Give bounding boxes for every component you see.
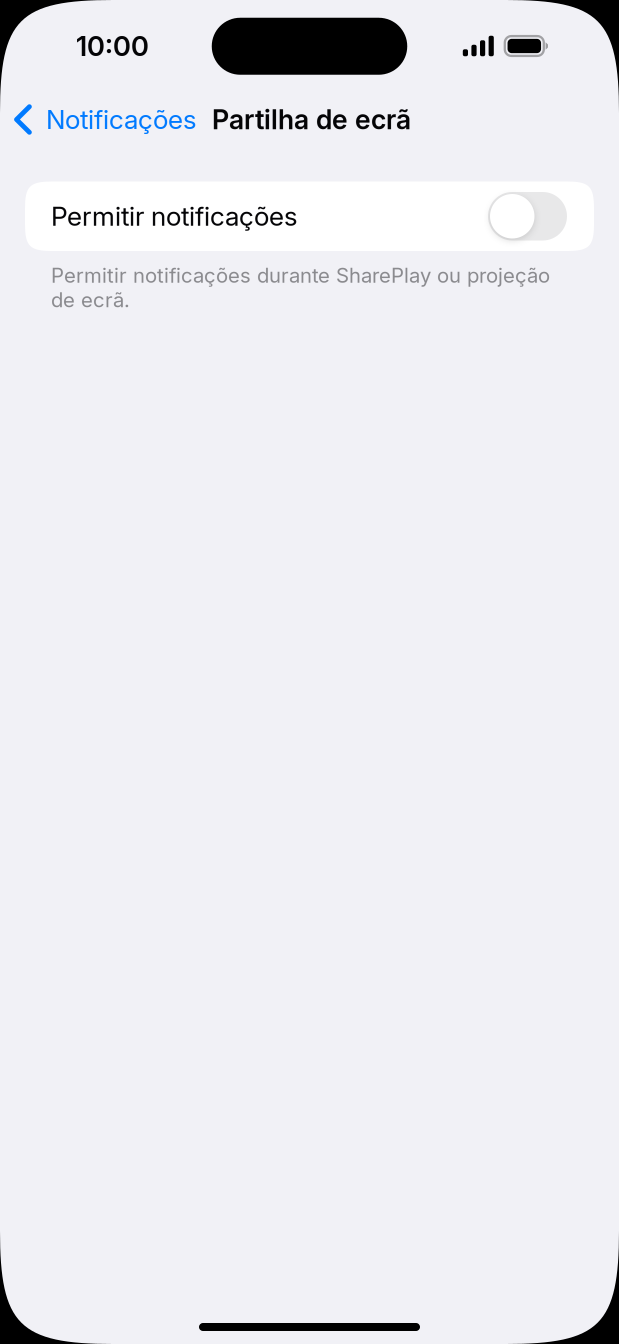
staticText: 10:00 xyxy=(76,29,149,63)
button[interactable]: Notificações xyxy=(0,93,212,145)
staticText: Notificações xyxy=(46,104,196,135)
staticText: Permitir notificações durante SharePlay … xyxy=(51,263,550,312)
staticText: Partilha de ecrã xyxy=(212,103,411,136)
staticText: Permitir notificações xyxy=(51,200,297,232)
button[interactable]: Permitir notificações xyxy=(25,181,594,251)
